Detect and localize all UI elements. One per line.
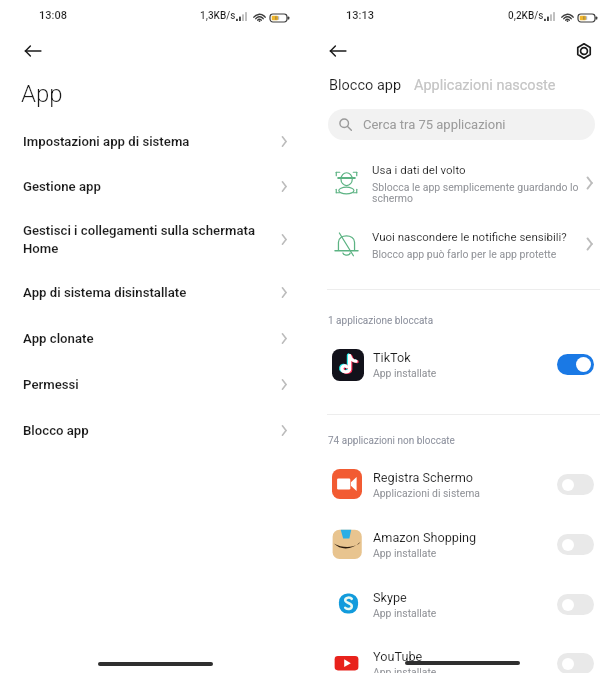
staticText: 13:08 <box>39 9 67 22</box>
staticText: Blocco app <box>23 423 265 438</box>
button[interactable] <box>305 220 610 282</box>
staticText: App installate <box>373 547 437 559</box>
staticText: Permessi <box>23 377 265 392</box>
button[interactable]: Enable <box>557 653 594 673</box>
button[interactable]: Enable <box>557 594 594 615</box>
button[interactable] <box>305 640 610 673</box>
staticText: Blocco app può farlo per le app protette <box>372 248 557 260</box>
staticText: App installate <box>373 367 437 379</box>
staticText: App clonate <box>23 331 265 346</box>
staticText: App di sistema disinstallate <box>23 285 265 300</box>
staticText: Vuoi nascondere le notifiche sensibili? <box>372 230 567 243</box>
button[interactable]: Disable <box>557 354 594 375</box>
staticText: Impostazioni app di sistema <box>23 134 265 149</box>
staticText: TikTok <box>373 350 411 365</box>
staticText: 74 applicazioni non bloccate <box>328 435 455 447</box>
staticText: Usa i dati del volto <box>372 163 466 176</box>
button[interactable]: Back <box>18 36 48 66</box>
button[interactable]: Applicazioni nascoste <box>414 77 556 94</box>
staticText: Applicazioni di sistema <box>373 487 480 499</box>
button[interactable]: Impostazioni app di sistema <box>0 118 305 164</box>
staticText: Amazon Shopping <box>373 530 477 545</box>
staticText: 13:13 <box>346 9 374 22</box>
button[interactable]: Blocco app <box>329 77 402 94</box>
staticText: 1 applicazione bloccata <box>328 315 434 327</box>
staticText: App installate <box>373 607 437 619</box>
button[interactable]: Permessi <box>0 361 305 407</box>
staticText: App <box>21 80 63 108</box>
staticText: App installate <box>373 666 437 673</box>
button[interactable] <box>305 521 610 571</box>
button[interactable]: Settings <box>569 36 599 66</box>
button[interactable]: Cerca tra 75 applicazioni <box>328 109 595 140</box>
button[interactable]: Gestisci i collegamenti sulla schermata … <box>0 209 305 269</box>
button[interactable] <box>305 153 610 215</box>
button[interactable]: App di sistema disinstallate <box>0 269 305 316</box>
button[interactable]: App clonate <box>0 316 305 361</box>
button[interactable]: Enable <box>557 474 594 495</box>
staticText: Cerca tra 75 applicazioni <box>363 117 506 132</box>
button[interactable] <box>305 461 610 511</box>
button[interactable]: Blocco app <box>0 407 305 453</box>
staticText: Gestisci i collegamenti sulla schermata … <box>23 223 265 256</box>
staticText: YouTube <box>373 649 423 664</box>
button[interactable]: Enable <box>557 534 594 555</box>
staticText: Registra Schermo <box>373 470 474 485</box>
staticText: Gestione app <box>23 179 265 194</box>
staticText: Skype <box>373 590 407 605</box>
button[interactable]: Gestione app <box>0 164 305 209</box>
staticText: 0,2KB/s <box>508 10 544 22</box>
button[interactable]: Back <box>323 36 353 66</box>
staticText: 1,3KB/s <box>200 10 236 22</box>
button[interactable] <box>305 341 610 391</box>
staticText: Sblocca le app semplicemente guardando l… <box>372 181 580 205</box>
button[interactable] <box>305 581 610 631</box>
